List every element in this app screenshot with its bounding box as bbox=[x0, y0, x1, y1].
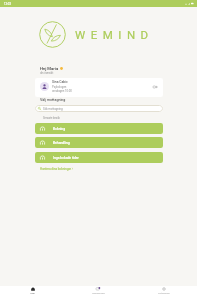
staticText: Inga bokade tider bbox=[53, 156, 79, 160]
button[interactable]: Meddelanden bbox=[65, 286, 131, 296]
staticText: Hem bbox=[30, 292, 35, 294]
staticText: Hantera dina bokningar › bbox=[40, 167, 73, 171]
other: Sök bbox=[38, 107, 41, 110]
staticText: Bokning bbox=[53, 127, 66, 131]
staticText: Sök mottagning bbox=[43, 107, 63, 110]
staticText: Sina Cabic bbox=[52, 80, 68, 84]
staticText: din översikt bbox=[40, 72, 54, 75]
other: Inställningar bbox=[162, 287, 166, 291]
staticText: Inställningar bbox=[158, 292, 170, 294]
staticText: Senaste besök bbox=[43, 117, 60, 120]
staticText: Hej Maria bbox=[40, 66, 59, 71]
button[interactable]: Hantera dina bokningar › bbox=[40, 167, 73, 171]
button[interactable]: Hem bbox=[0, 286, 65, 296]
other: Videomöte bbox=[153, 85, 157, 89]
button[interactable]: Sök bbox=[35, 105, 163, 112]
other: Meddelanden bbox=[96, 287, 100, 291]
staticText: Behandling bbox=[53, 141, 70, 145]
other: Hem bbox=[31, 287, 35, 291]
button[interactable]: Inga bokade tider bbox=[35, 152, 163, 163]
staticText: Psykologen bbox=[52, 85, 67, 88]
button[interactable]: Sina Cabic bbox=[35, 78, 163, 97]
staticText: Meddelanden bbox=[92, 292, 105, 294]
button[interactable]: Behandling bbox=[35, 137, 163, 148]
staticText: Välj mottagning bbox=[40, 98, 66, 102]
staticText: 13:03 bbox=[4, 2, 11, 5]
button[interactable]: Bokning bbox=[35, 123, 163, 134]
button[interactable]: Inställningar bbox=[131, 286, 197, 296]
staticText: onsdagen 10:00 bbox=[52, 89, 72, 92]
staticText: WEMIND bbox=[75, 28, 154, 41]
